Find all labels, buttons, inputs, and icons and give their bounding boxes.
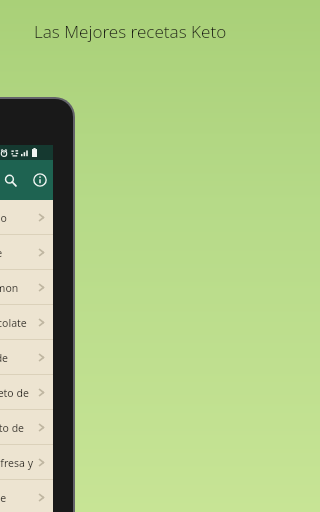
button[interactable]: Bizcocho keto de naranja: [0, 480, 53, 512]
button[interactable]: Helado keto de fresa y limon: [0, 445, 53, 480]
staticText: Brownies keto de almendra con: [0, 351, 35, 365]
button[interactable]: Galletas keto de mantequilla: [0, 235, 53, 270]
staticText: Panqueques keto de harina y: [0, 421, 35, 435]
button[interactable]: Crema batida keto de vainilla: [0, 375, 53, 410]
button[interactable]: Brownies keto de almendra con: [0, 340, 53, 375]
staticText: Mousse de chocolate sin azúcar: [0, 316, 35, 330]
staticText: Tarta keto de limon fresca: [0, 281, 35, 295]
staticText: Bizcocho keto de naranja: [0, 491, 35, 505]
button[interactable]: Informacion: [25, 165, 55, 195]
staticText: Pan keto de coco esponjoso: [0, 211, 35, 225]
staticText: Crema batida keto de vainilla: [0, 386, 35, 400]
button[interactable]: Panqueques keto de harina y: [0, 410, 53, 445]
staticText: Galletas keto de mantequilla: [0, 246, 35, 260]
button[interactable]: Tarta keto de limon fresca: [0, 270, 53, 305]
button[interactable]: Mousse de chocolate sin azúcar: [0, 305, 53, 340]
button[interactable]: Buscar: [0, 165, 25, 195]
button[interactable]: Pan keto de coco esponjoso: [0, 200, 53, 235]
staticText: Helado keto de fresa y limon: [0, 456, 35, 470]
staticText: Las Mejores recetas Keto: [34, 20, 227, 43]
